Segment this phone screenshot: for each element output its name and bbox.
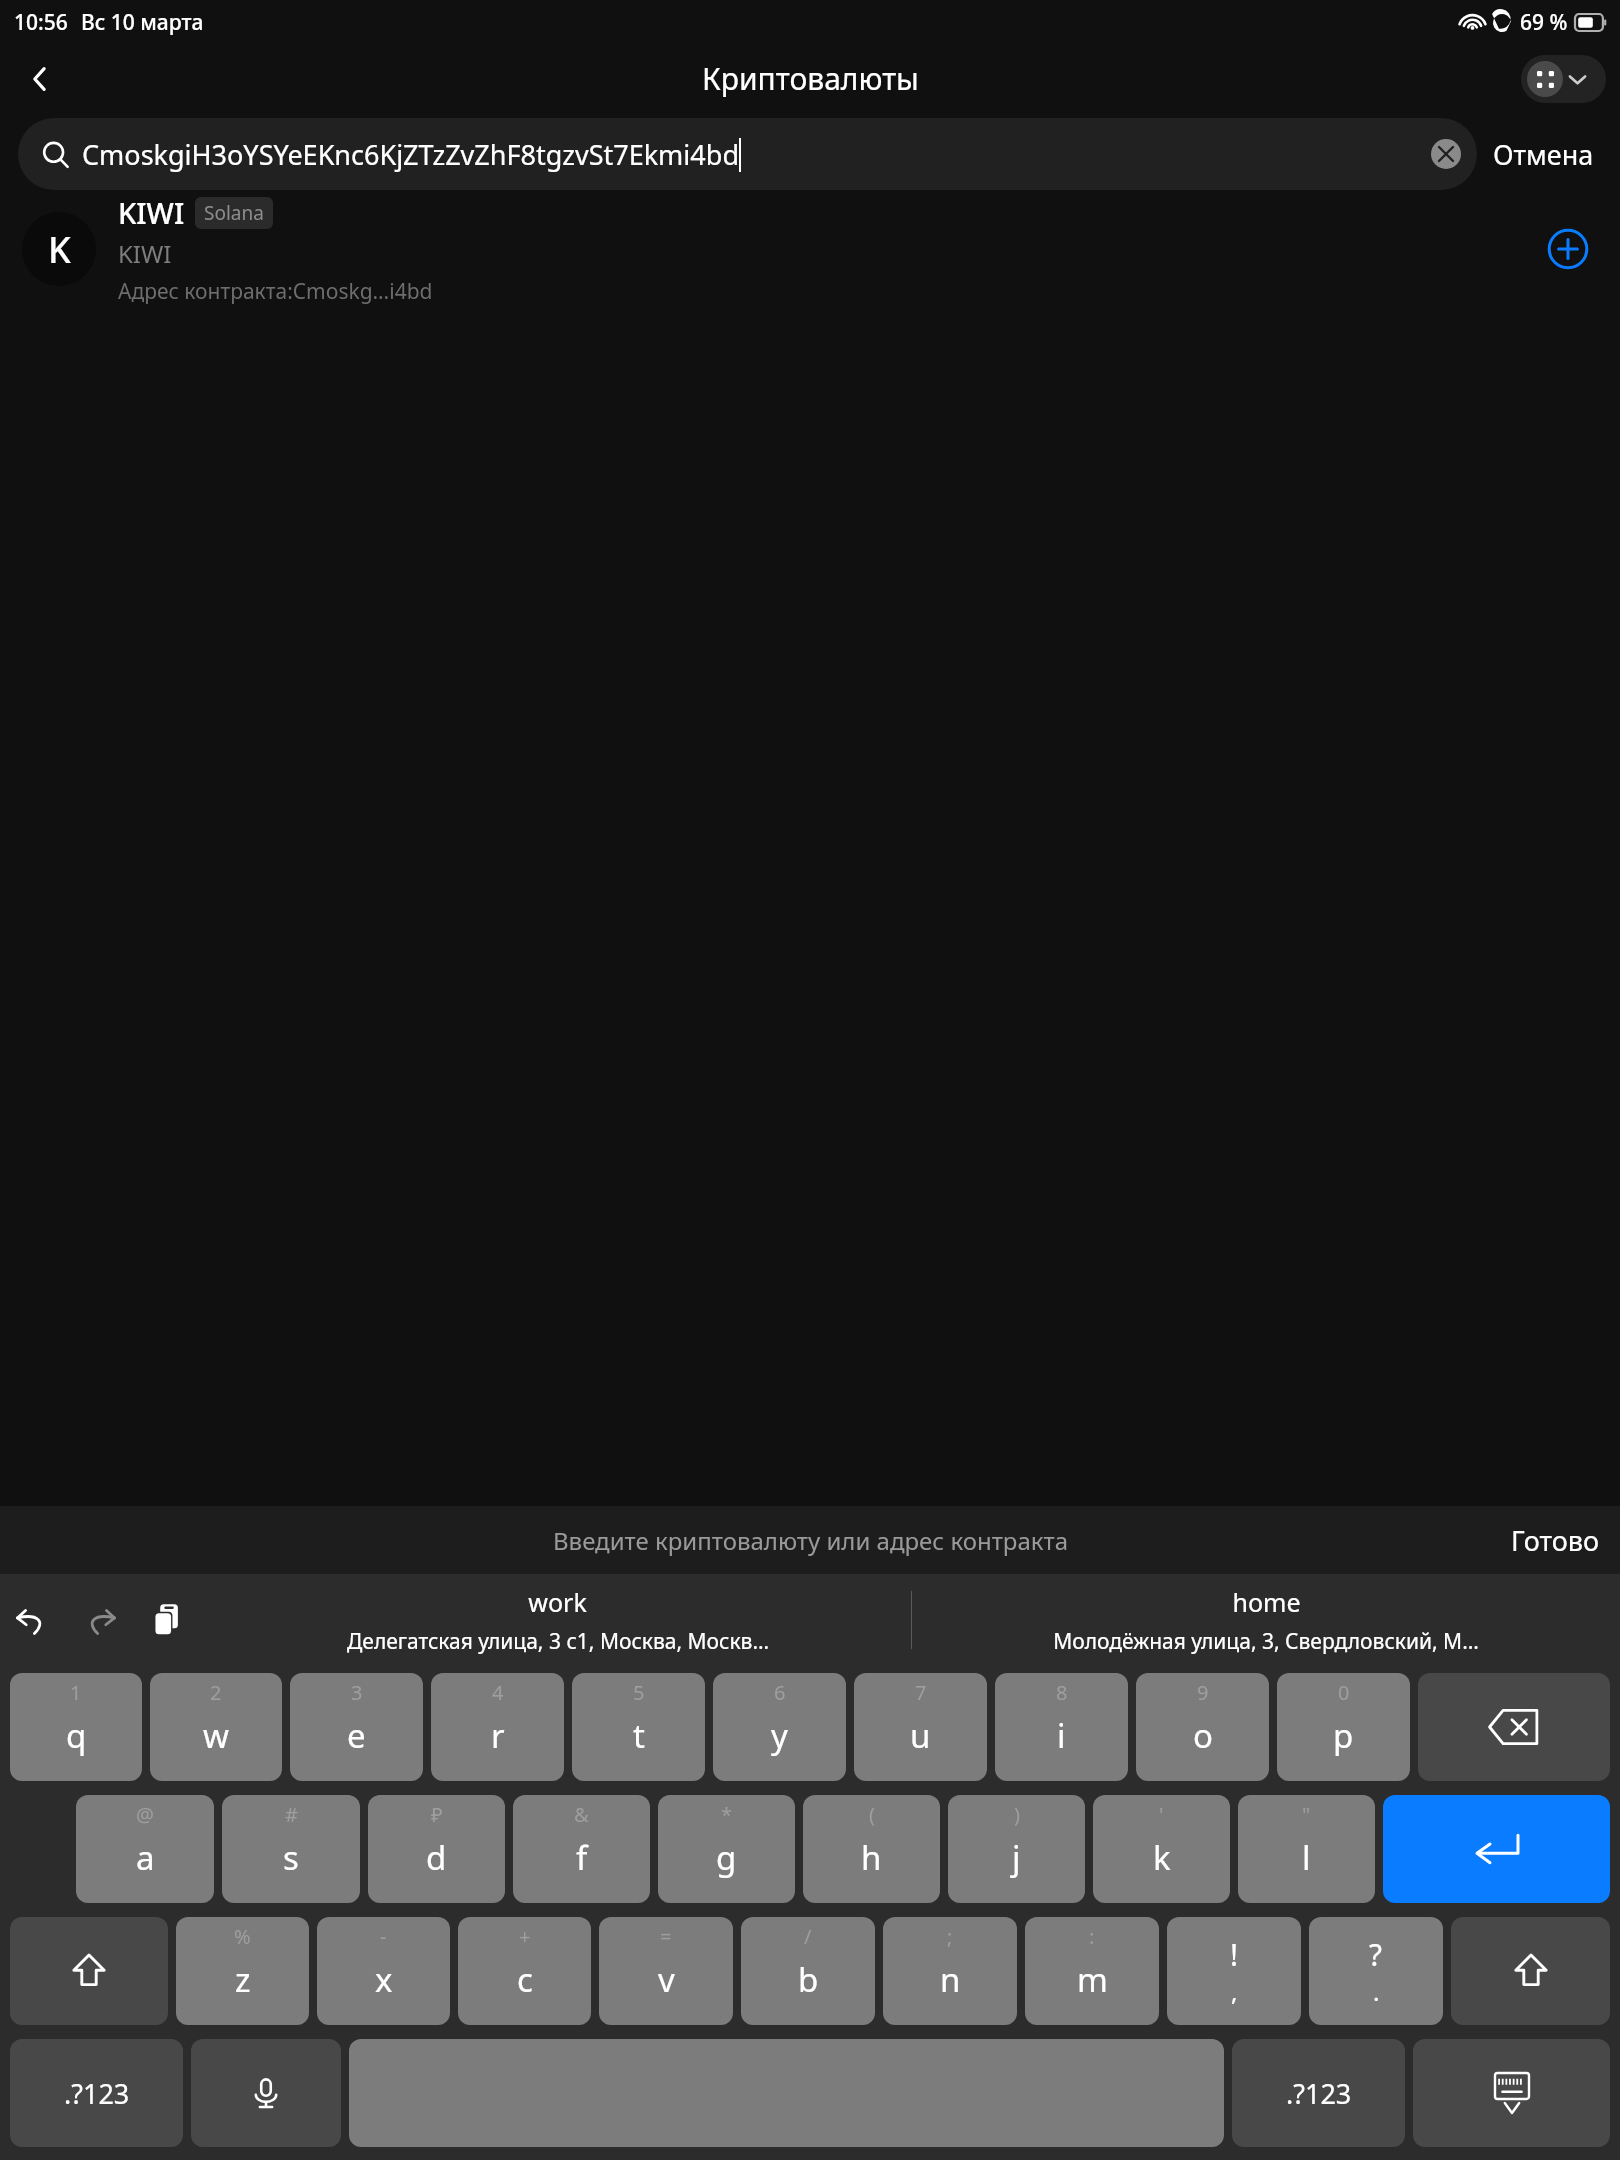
- button[interactable]: @: [76, 1795, 214, 1903]
- button[interactable]: !: [1167, 1917, 1301, 2025]
- button[interactable]: Голосовой ввод: [191, 2039, 341, 2147]
- button[interactable]: ': [1093, 1795, 1230, 1903]
- staticText: z: [235, 1957, 251, 2002]
- staticText: p: [1333, 1713, 1354, 1758]
- button[interactable]: 4: [431, 1673, 564, 1781]
- staticText: l: [1302, 1835, 1311, 1880]
- staticText: %: [234, 1923, 251, 1950]
- button[interactable]: K: [0, 190, 1620, 308]
- staticText: d: [426, 1835, 447, 1880]
- button[interactable]: 1: [10, 1673, 142, 1781]
- staticText: Отмена: [1493, 136, 1594, 173]
- staticText: w: [203, 1713, 229, 1758]
- button[interactable]: home: [912, 1579, 1620, 1662]
- staticText: f: [576, 1835, 588, 1880]
- staticText: Введите криптовалюту или адрес контракта: [553, 1524, 1068, 1557]
- staticText: 6: [774, 1679, 786, 1706]
- staticText: Криптовалюты: [702, 58, 919, 99]
- staticText: 0: [1338, 1679, 1350, 1706]
- button[interactable]: /: [741, 1917, 875, 2025]
- button[interactable]: ;: [883, 1917, 1017, 2025]
- button[interactable]: Очистить: [1421, 129, 1471, 179]
- button[interactable]: Готово: [1491, 1514, 1620, 1567]
- button[interactable]: 5: [572, 1673, 705, 1781]
- button[interactable]: Буфер обмена: [136, 1589, 198, 1651]
- button[interactable]: &: [513, 1795, 650, 1903]
- staticText: h: [861, 1835, 882, 1880]
- button[interactable]: .?123: [1232, 2039, 1405, 2147]
- button[interactable]: work: [204, 1579, 911, 1662]
- staticText: ": [1302, 1801, 1311, 1828]
- staticText: 10:56: [14, 8, 68, 37]
- button[interactable]: ): [948, 1795, 1085, 1903]
- staticText: 3: [351, 1679, 363, 1706]
- staticText: ?: [1369, 1934, 1383, 1975]
- staticText: a: [136, 1835, 155, 1880]
- staticText: *: [721, 1801, 733, 1828]
- staticText: ₽: [431, 1801, 443, 1828]
- staticText: j: [1012, 1835, 1021, 1880]
- button[interactable]: 9: [1136, 1673, 1269, 1781]
- staticText: ': [1159, 1801, 1164, 1828]
- button[interactable]: Регистр: [1451, 1917, 1610, 2025]
- staticText: 5: [633, 1679, 645, 1706]
- button[interactable]: ₽: [368, 1795, 505, 1903]
- button[interactable]: :: [1025, 1917, 1159, 2025]
- button[interactable]: 0: [1277, 1673, 1410, 1781]
- button[interactable]: 2: [150, 1673, 282, 1781]
- button[interactable]: .?123: [10, 2039, 183, 2147]
- staticText: 7: [915, 1679, 927, 1706]
- staticText: e: [347, 1713, 366, 1758]
- staticText: c: [517, 1957, 533, 2002]
- staticText: b: [798, 1957, 819, 2002]
- staticText: i: [1057, 1713, 1066, 1758]
- staticText: =: [660, 1923, 672, 1950]
- button[interactable]: Назад: [14, 53, 66, 105]
- button[interactable]: -: [317, 1917, 450, 2025]
- staticText: 9: [1197, 1679, 1209, 1706]
- staticText: y: [771, 1713, 788, 1758]
- staticText: #: [285, 1801, 298, 1828]
- button[interactable]: 8: [995, 1673, 1128, 1781]
- button[interactable]: #: [222, 1795, 360, 1903]
- staticText: 1: [70, 1679, 82, 1706]
- button[interactable]: %: [176, 1917, 309, 2025]
- staticText: Молодёжная улица, 3, Свердловский, М…: [1053, 1627, 1479, 1656]
- button[interactable]: Удалить: [1418, 1673, 1610, 1781]
- staticText: 2: [210, 1679, 222, 1706]
- button[interactable]: Отменить: [0, 1589, 62, 1651]
- staticText: ): [1014, 1801, 1020, 1828]
- button[interactable]: Меню приложений: [1521, 55, 1606, 103]
- button[interactable]: 7: [854, 1673, 987, 1781]
- staticText: n: [940, 1957, 961, 2002]
- staticText: work: [528, 1585, 587, 1619]
- button[interactable]: 3: [290, 1673, 423, 1781]
- button[interactable]: Регистр: [10, 1917, 168, 2025]
- button[interactable]: 6: [713, 1673, 846, 1781]
- staticText: 69 %: [1520, 8, 1568, 37]
- staticText: /: [804, 1923, 812, 1950]
- staticText: Делегатская улица, 3 с1, Москва, Москв…: [347, 1627, 769, 1656]
- button[interactable]: *: [658, 1795, 795, 1903]
- button[interactable]: (: [803, 1795, 940, 1903]
- button[interactable]: Ввод: [1383, 1795, 1610, 1903]
- staticText: q: [66, 1713, 87, 1758]
- button[interactable]: CmoskgiH3oYSYeEKnc6KjZTzZvZhF8tgzvSt7Ekm…: [18, 118, 1477, 190]
- button[interactable]: Скрыть клавиатуру: [1413, 2039, 1610, 2147]
- staticText: x: [375, 1957, 393, 2002]
- staticText: -: [380, 1923, 387, 1950]
- button[interactable]: ?: [1309, 1917, 1443, 2025]
- button[interactable]: Отмена: [1485, 126, 1602, 183]
- button[interactable]: Добавить: [1538, 219, 1598, 279]
- button[interactable]: ": [1238, 1795, 1375, 1903]
- staticText: Solana: [204, 200, 264, 226]
- staticText: Готово: [1511, 1522, 1600, 1559]
- button[interactable]: +: [458, 1917, 591, 2025]
- staticText: 4: [492, 1679, 504, 1706]
- button[interactable]: =: [599, 1917, 733, 2025]
- staticText: o: [1193, 1713, 1213, 1758]
- staticText: :: [1089, 1923, 1095, 1950]
- staticText: &: [574, 1801, 589, 1828]
- button[interactable]: Повторить: [70, 1589, 132, 1651]
